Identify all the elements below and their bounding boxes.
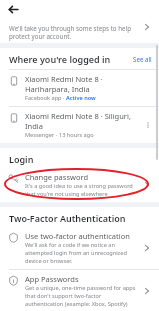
staticText: Active now bbox=[66, 94, 96, 102]
button[interactable]: Back bbox=[7, 3, 20, 16]
button[interactable]: Settings bbox=[0, 19, 159, 43]
staticText: Use two-factor authentication bbox=[25, 231, 130, 241]
staticText: Messenger · bbox=[25, 131, 59, 139]
staticText: Login bbox=[9, 153, 34, 165]
staticText: We'll ask for a code if we notice an att… bbox=[25, 241, 140, 265]
button[interactable]: See all bbox=[133, 55, 152, 63]
staticText: 13 hours ago bbox=[59, 131, 94, 139]
staticText: Two-Factor Authentication bbox=[9, 212, 126, 224]
button[interactable]: Xiaomi Redmi Note 8 · Siliguri, India bbox=[0, 107, 159, 143]
staticText: See all bbox=[133, 55, 152, 63]
button[interactable]: Xiaomi Redmi Note 8 · Hariharpara, India bbox=[0, 70, 159, 106]
staticText: App Passwords bbox=[25, 274, 79, 284]
staticText: Xiaomi Redmi Note 8 · Hariharpara, India bbox=[25, 74, 143, 94]
staticText: It's a good idea to use a strong passwor… bbox=[25, 182, 140, 198]
button[interactable]: Change password bbox=[0, 168, 159, 202]
staticText: Get a unique, one-time password for apps… bbox=[25, 284, 140, 307]
staticText: Xiaomi Redmi Note 8 · Siliguri, India bbox=[25, 111, 143, 131]
button[interactable]: Use two-factor authentication bbox=[0, 227, 159, 269]
staticText: We'll take you through some steps to hel… bbox=[9, 24, 143, 40]
button[interactable]: More options bbox=[143, 120, 153, 130]
staticText: Change password bbox=[25, 172, 89, 182]
staticText: Where you're logged in bbox=[9, 53, 133, 65]
button[interactable]: App Passwords bbox=[0, 270, 159, 311]
staticText: Facebook app · bbox=[25, 94, 66, 102]
